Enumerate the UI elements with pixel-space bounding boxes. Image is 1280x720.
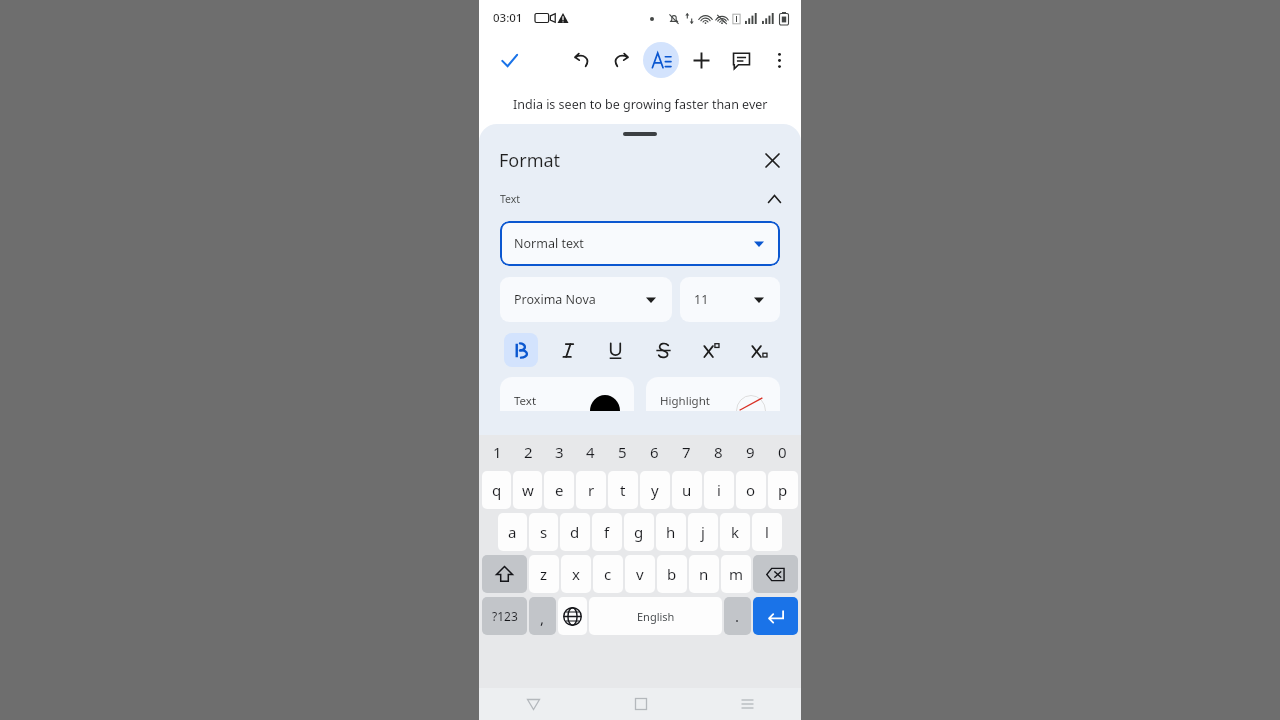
staticText: x	[572, 564, 580, 584]
staticText: m	[729, 564, 744, 584]
button[interactable]: v	[625, 555, 655, 593]
button[interactable]: Normal text	[500, 221, 780, 266]
button[interactable]: a	[498, 513, 527, 551]
button[interactable]: r	[576, 471, 606, 509]
button[interactable]: 9	[734, 435, 766, 469]
staticText: k	[731, 522, 740, 542]
button[interactable]: p	[768, 471, 798, 509]
button[interactable]: s	[529, 513, 558, 551]
button[interactable]: English	[589, 597, 722, 635]
button[interactable]	[694, 333, 728, 367]
staticText: p	[778, 480, 788, 500]
button[interactable]: Format	[643, 42, 679, 78]
button[interactable]: 6	[638, 435, 670, 469]
button[interactable]: f	[592, 513, 622, 551]
button[interactable]: e	[544, 471, 574, 509]
staticText: t	[620, 480, 626, 500]
staticText: o	[746, 480, 756, 500]
button[interactable]: 2	[513, 435, 544, 469]
staticText: 3	[555, 442, 564, 462]
button[interactable]: 0	[766, 435, 798, 469]
button[interactable]: o	[736, 471, 766, 509]
staticText: 4	[586, 442, 595, 462]
staticText: f	[604, 522, 610, 542]
button[interactable]: Back	[479, 688, 587, 720]
button[interactable]: Comments	[723, 42, 759, 78]
staticText: l	[765, 522, 769, 542]
button[interactable]: Insert	[683, 42, 719, 78]
staticText: w	[522, 480, 534, 500]
button[interactable]: h	[656, 513, 686, 551]
button[interactable]: n	[689, 555, 719, 593]
button[interactable]	[742, 333, 776, 367]
button[interactable]: g	[624, 513, 654, 551]
staticText: English	[637, 609, 675, 624]
button[interactable]: More options	[761, 42, 797, 78]
staticText: a	[508, 522, 517, 542]
button[interactable]: 8	[702, 435, 734, 469]
button[interactable]	[504, 333, 538, 367]
staticText: r	[588, 480, 595, 500]
staticText: d	[570, 522, 580, 542]
button[interactable]: ?123	[482, 597, 527, 635]
button[interactable]: 11	[680, 277, 780, 322]
button[interactable]: ,	[529, 597, 556, 635]
button[interactable]: t	[608, 471, 638, 509]
staticText: i	[717, 480, 721, 500]
button[interactable]: Text	[500, 377, 634, 411]
button[interactable]: y	[640, 471, 670, 509]
button[interactable]: Change language	[558, 597, 587, 635]
button[interactable]: 3	[544, 435, 575, 469]
staticText: g	[634, 522, 644, 542]
button[interactable]: w	[513, 471, 542, 509]
button[interactable]: Recents	[694, 688, 801, 720]
staticText: 5	[618, 442, 627, 462]
staticText: ?123	[492, 608, 518, 624]
button[interactable]: Redo	[603, 42, 639, 78]
staticText: Format	[499, 148, 561, 173]
button[interactable]: z	[529, 555, 559, 593]
staticText: j	[701, 522, 705, 542]
button[interactable]: Proxima Nova	[500, 277, 672, 322]
button[interactable]: Close	[755, 143, 789, 177]
button[interactable]: Highlight	[646, 377, 780, 411]
staticText: c	[604, 564, 612, 584]
button[interactable]: l	[752, 513, 782, 551]
button[interactable]: i	[704, 471, 734, 509]
button[interactable]: 5	[606, 435, 638, 469]
button[interactable]: Undo	[563, 42, 599, 78]
button[interactable]: q	[482, 471, 511, 509]
staticText: 7	[682, 442, 691, 462]
button[interactable]: m	[721, 555, 751, 593]
button[interactable]: d	[560, 513, 590, 551]
button[interactable]: k	[720, 513, 750, 551]
button[interactable]: u	[672, 471, 702, 509]
staticText: y	[651, 480, 659, 500]
button[interactable]	[598, 333, 632, 367]
staticText: e	[555, 480, 564, 500]
button[interactable]: 1	[482, 435, 513, 469]
button[interactable]: Done	[491, 42, 527, 78]
staticText: .	[735, 606, 740, 626]
button[interactable]: Home	[587, 688, 694, 720]
staticText: 9	[746, 442, 755, 462]
staticText: 6	[650, 442, 659, 462]
button[interactable]: Backspace	[753, 555, 798, 593]
staticText: Normal text	[514, 235, 584, 252]
button[interactable]: b	[657, 555, 687, 593]
staticText: Proxima Nova	[514, 291, 596, 308]
button[interactable]: j	[688, 513, 718, 551]
button[interactable]: c	[593, 555, 623, 593]
staticText: b	[667, 564, 677, 584]
staticText: 11	[694, 291, 709, 308]
button[interactable]	[551, 333, 585, 367]
button[interactable]: Shift	[482, 555, 527, 593]
staticText: 8	[714, 442, 723, 462]
button[interactable]: Text	[479, 182, 801, 216]
button[interactable]: Enter	[753, 597, 798, 635]
button[interactable]: 7	[670, 435, 702, 469]
button[interactable]	[646, 333, 680, 367]
button[interactable]: 4	[575, 435, 606, 469]
button[interactable]: x	[561, 555, 591, 593]
button[interactable]: .	[724, 597, 751, 635]
